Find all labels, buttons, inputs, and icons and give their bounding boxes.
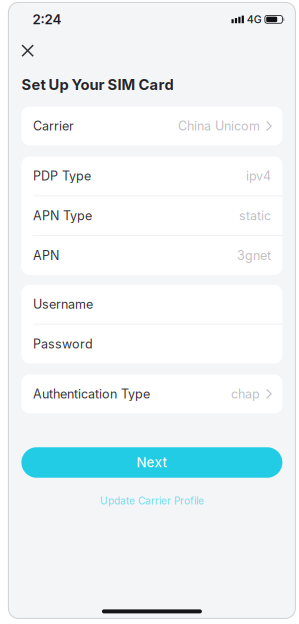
staticText: 4G — [247, 13, 262, 26]
button[interactable]: Password — [21, 325, 282, 363]
staticText: PDP Type — [33, 168, 91, 183]
staticText: Authentication Type — [33, 386, 150, 401]
staticText: APN — [33, 248, 59, 263]
button[interactable]: Close — [16, 39, 39, 62]
staticText: Next — [136, 454, 167, 470]
button[interactable]: PDP Type — [21, 156, 282, 195]
staticText: Set Up Your SIM Card — [21, 76, 173, 94]
button[interactable]: Update Carrier Profile — [95, 490, 209, 512]
staticText: 2:24 — [32, 11, 61, 27]
staticText: ipv4 — [246, 168, 271, 183]
staticText: Username — [33, 297, 93, 312]
staticText: APN Type — [33, 208, 92, 223]
staticText: Update Carrier Profile — [100, 495, 204, 507]
button[interactable]: APN — [21, 236, 282, 275]
staticText: China Unicom — [178, 118, 260, 134]
button[interactable]: Carrier — [21, 107, 282, 145]
staticText: static — [239, 208, 271, 223]
staticText: Carrier — [33, 118, 74, 134]
button[interactable]: APN Type — [21, 196, 282, 235]
button[interactable]: Username — [21, 285, 282, 324]
button[interactable]: Next — [21, 447, 282, 478]
button[interactable]: Authentication Type — [21, 374, 282, 413]
staticText: 3gnet — [237, 248, 271, 263]
staticText: chap — [231, 386, 260, 401]
staticText: Password — [33, 336, 93, 352]
